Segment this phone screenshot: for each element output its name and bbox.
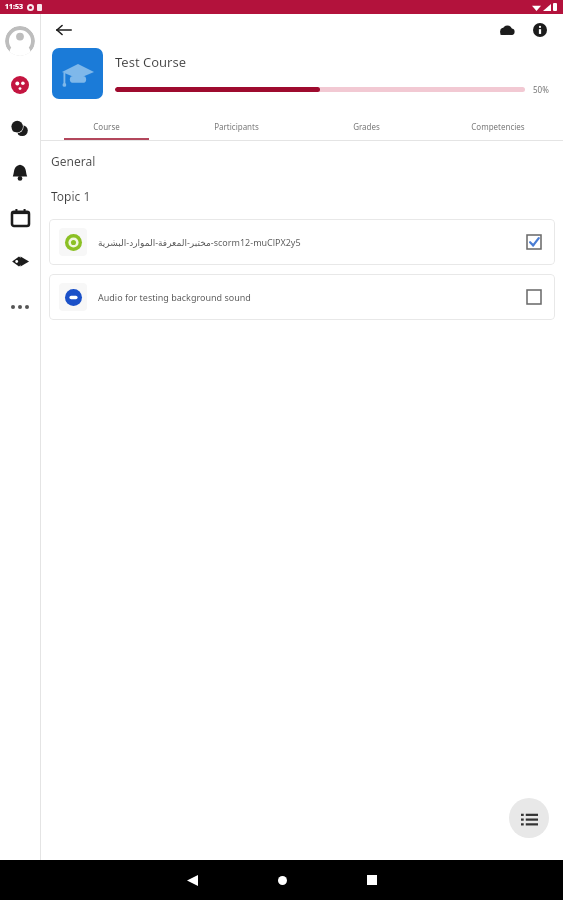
button[interactable]: Grades [301, 112, 432, 140]
button[interactable]: Recents [352, 860, 392, 900]
button[interactable]: Profile [5, 26, 35, 56]
button[interactable]: Calendar [5, 202, 35, 232]
button[interactable]: Completed [523, 231, 545, 253]
button[interactable]: Notifications [5, 158, 35, 188]
staticText: 50% [533, 84, 549, 95]
button[interactable]: Notifications badge [5, 70, 35, 100]
staticText: مختبر-المعرفة-الموارد-البشرية-scorm12-mu… [98, 236, 515, 248]
staticText: Participants [214, 121, 259, 132]
staticText: Test Course [115, 53, 186, 71]
staticText: Audio for testing background sound [98, 291, 515, 303]
staticText: Grades [353, 121, 380, 132]
staticText: General [51, 153, 96, 169]
button[interactable]: Competencies [432, 112, 563, 140]
button[interactable]: Information [527, 17, 553, 43]
button[interactable]: Course [41, 112, 171, 140]
staticText: Topic 1 [51, 188, 91, 204]
staticText: 11:53 [5, 2, 23, 12]
button[interactable]: Back [172, 860, 212, 900]
button[interactable]: Back [51, 17, 77, 43]
button[interactable]: Participants [171, 112, 301, 140]
button[interactable]: More [5, 292, 35, 322]
button[interactable]: Mark as done [523, 286, 545, 308]
button[interactable]: Course index [509, 798, 549, 838]
button[interactable]: Tags [5, 246, 35, 276]
button[interactable]: Audio for testing background sound [49, 274, 555, 320]
button[interactable]: Messages [5, 114, 35, 144]
staticText: Course [93, 121, 120, 132]
button[interactable]: مختبر-المعرفة-الموارد-البشرية-scorm12-mu… [49, 219, 555, 265]
staticText: Competencies [471, 121, 525, 132]
button[interactable]: Download [493, 17, 519, 43]
button[interactable]: Home [262, 860, 302, 900]
